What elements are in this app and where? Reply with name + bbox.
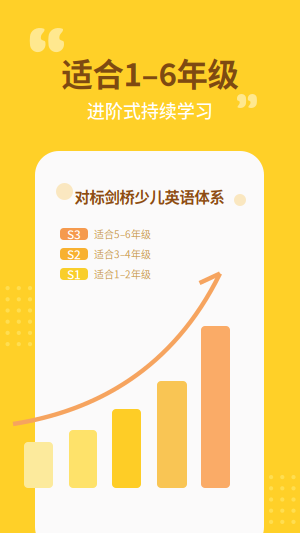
staticText: 适合3–4年级 <box>94 247 151 261</box>
staticText: 进阶式持续学习 <box>87 97 213 123</box>
staticText: S2 <box>67 245 81 263</box>
staticText: 对标剑桥少儿英语体系 <box>74 185 224 207</box>
staticText: 适合1–2年级 <box>94 267 151 281</box>
staticText: 适合1–6年级 <box>61 50 238 95</box>
staticText: S1 <box>67 265 81 283</box>
staticText: S3 <box>67 225 81 243</box>
staticText: 适合5–6年级 <box>94 227 151 241</box>
